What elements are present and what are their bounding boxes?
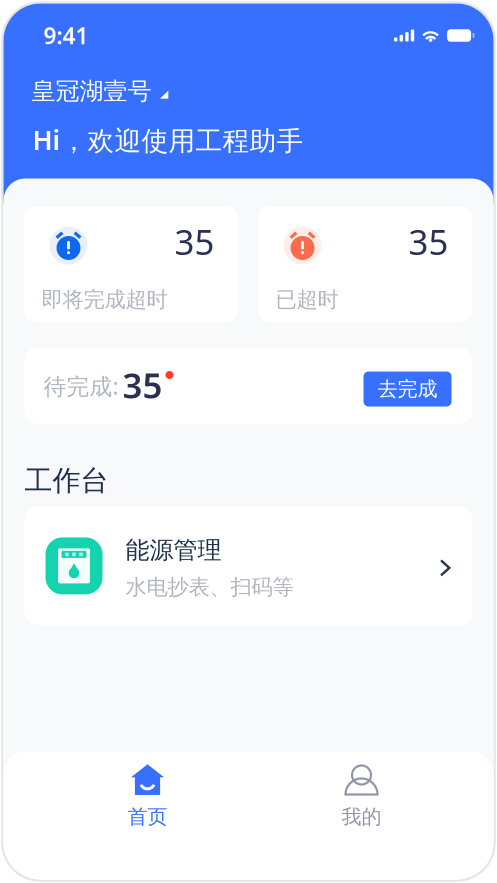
- staticText: 已超时: [275, 286, 338, 313]
- staticText: 35: [408, 218, 448, 264]
- staticText: 35: [122, 362, 162, 408]
- staticText: 9:41: [43, 20, 88, 50]
- button[interactable]: 待完成:: [3, 348, 472, 423]
- staticText: 即将完成超时: [41, 286, 167, 313]
- staticText: 皇冠湖壹号: [31, 76, 151, 106]
- button[interactable]: 首页: [40, 751, 254, 879]
- staticText: 我的: [341, 804, 381, 829]
- button[interactable]: 我的: [254, 751, 468, 879]
- staticText: 35: [174, 218, 214, 264]
- button[interactable]: 35: [24, 206, 238, 322]
- staticText: 首页: [127, 804, 167, 829]
- button[interactable]: 能源管理: [3, 507, 472, 625]
- button[interactable]: 35: [258, 206, 472, 322]
- staticText: 去完成: [377, 377, 437, 401]
- staticText: 水电抄表、扫码等: [125, 574, 293, 600]
- staticText: 工作台: [24, 463, 108, 498]
- staticText: Hi，欢迎使用工程助手: [32, 122, 303, 158]
- staticText: 能源管理: [125, 536, 221, 565]
- button[interactable]: 皇冠湖壹号: [3, 76, 493, 106]
- staticText: 待完成:: [43, 371, 118, 401]
